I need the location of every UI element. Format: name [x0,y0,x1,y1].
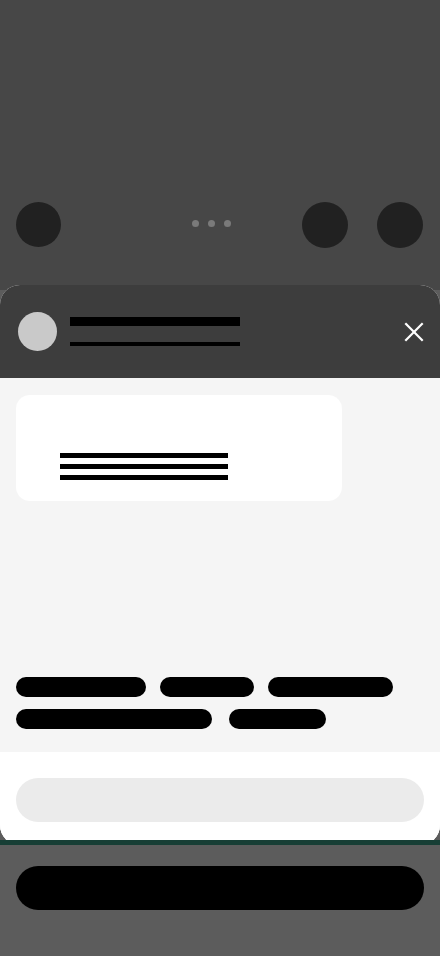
button[interactable]: Account [302,202,348,248]
button[interactable] [16,677,146,697]
button[interactable]: Profile photo [18,312,57,351]
button[interactable]: Close [390,308,438,356]
button[interactable] [268,677,393,697]
button[interactable] [160,677,254,697]
button[interactable] [229,709,326,729]
button[interactable]: More options [192,220,231,227]
button[interactable]: Settings [377,202,423,248]
button[interactable] [16,395,342,501]
button[interactable]: Back [16,202,61,247]
button[interactable] [16,709,212,729]
button[interactable] [16,866,424,910]
